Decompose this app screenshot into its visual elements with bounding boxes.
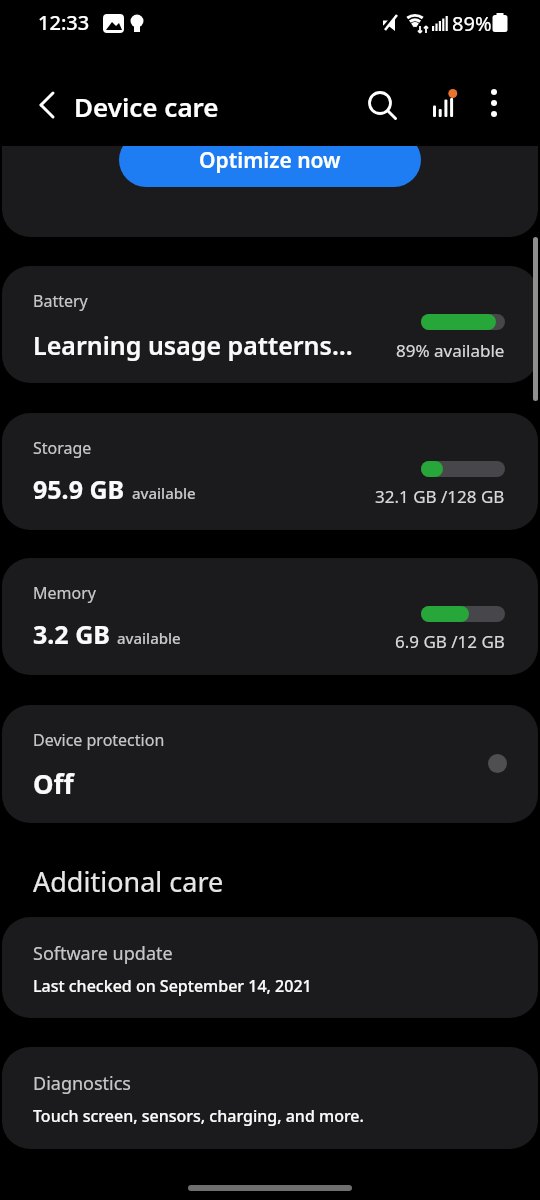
staticText: 6.9 GB /12 GB	[395, 630, 505, 653]
staticText: Battery	[33, 290, 88, 312]
staticText: Touch screen, sensors, charging, and mor…	[33, 1105, 364, 1127]
staticText: Storage	[33, 437, 92, 459]
button[interactable]	[2, 1047, 538, 1149]
staticText: available	[117, 628, 181, 648]
button[interactable]: Optimize now	[119, 133, 421, 187]
button[interactable]	[2, 917, 538, 1018]
staticText: Memory	[33, 582, 96, 604]
button[interactable]	[2, 413, 538, 530]
staticText: Last checked on September 14, 2021	[33, 975, 312, 997]
staticText: 95.9 GB	[33, 472, 125, 506]
staticText: 12:33	[38, 9, 90, 36]
button[interactable]	[26, 86, 66, 126]
staticText: Diagnostics	[33, 1071, 131, 1096]
staticText: available	[132, 483, 196, 503]
staticText: 3.2 GB	[33, 617, 110, 651]
staticText: Device protection	[33, 729, 165, 751]
button[interactable]	[2, 266, 538, 383]
staticText: Optimize now	[199, 146, 341, 175]
staticText: Software update	[33, 941, 173, 966]
staticText: Device care	[74, 89, 219, 124]
staticText: 89% available	[396, 339, 505, 362]
staticText: Additional care	[33, 863, 224, 900]
button[interactable]	[360, 84, 400, 124]
button[interactable]	[424, 84, 464, 124]
staticText: Off	[33, 766, 74, 801]
staticText: 32.1 GB /128 GB	[375, 485, 505, 508]
staticText: 89%	[452, 10, 492, 37]
button[interactable]	[2, 146, 538, 237]
staticText: Learning usage patterns…	[33, 328, 353, 362]
button[interactable]	[474, 84, 514, 124]
button[interactable]	[2, 705, 538, 823]
button[interactable]	[2, 558, 538, 675]
